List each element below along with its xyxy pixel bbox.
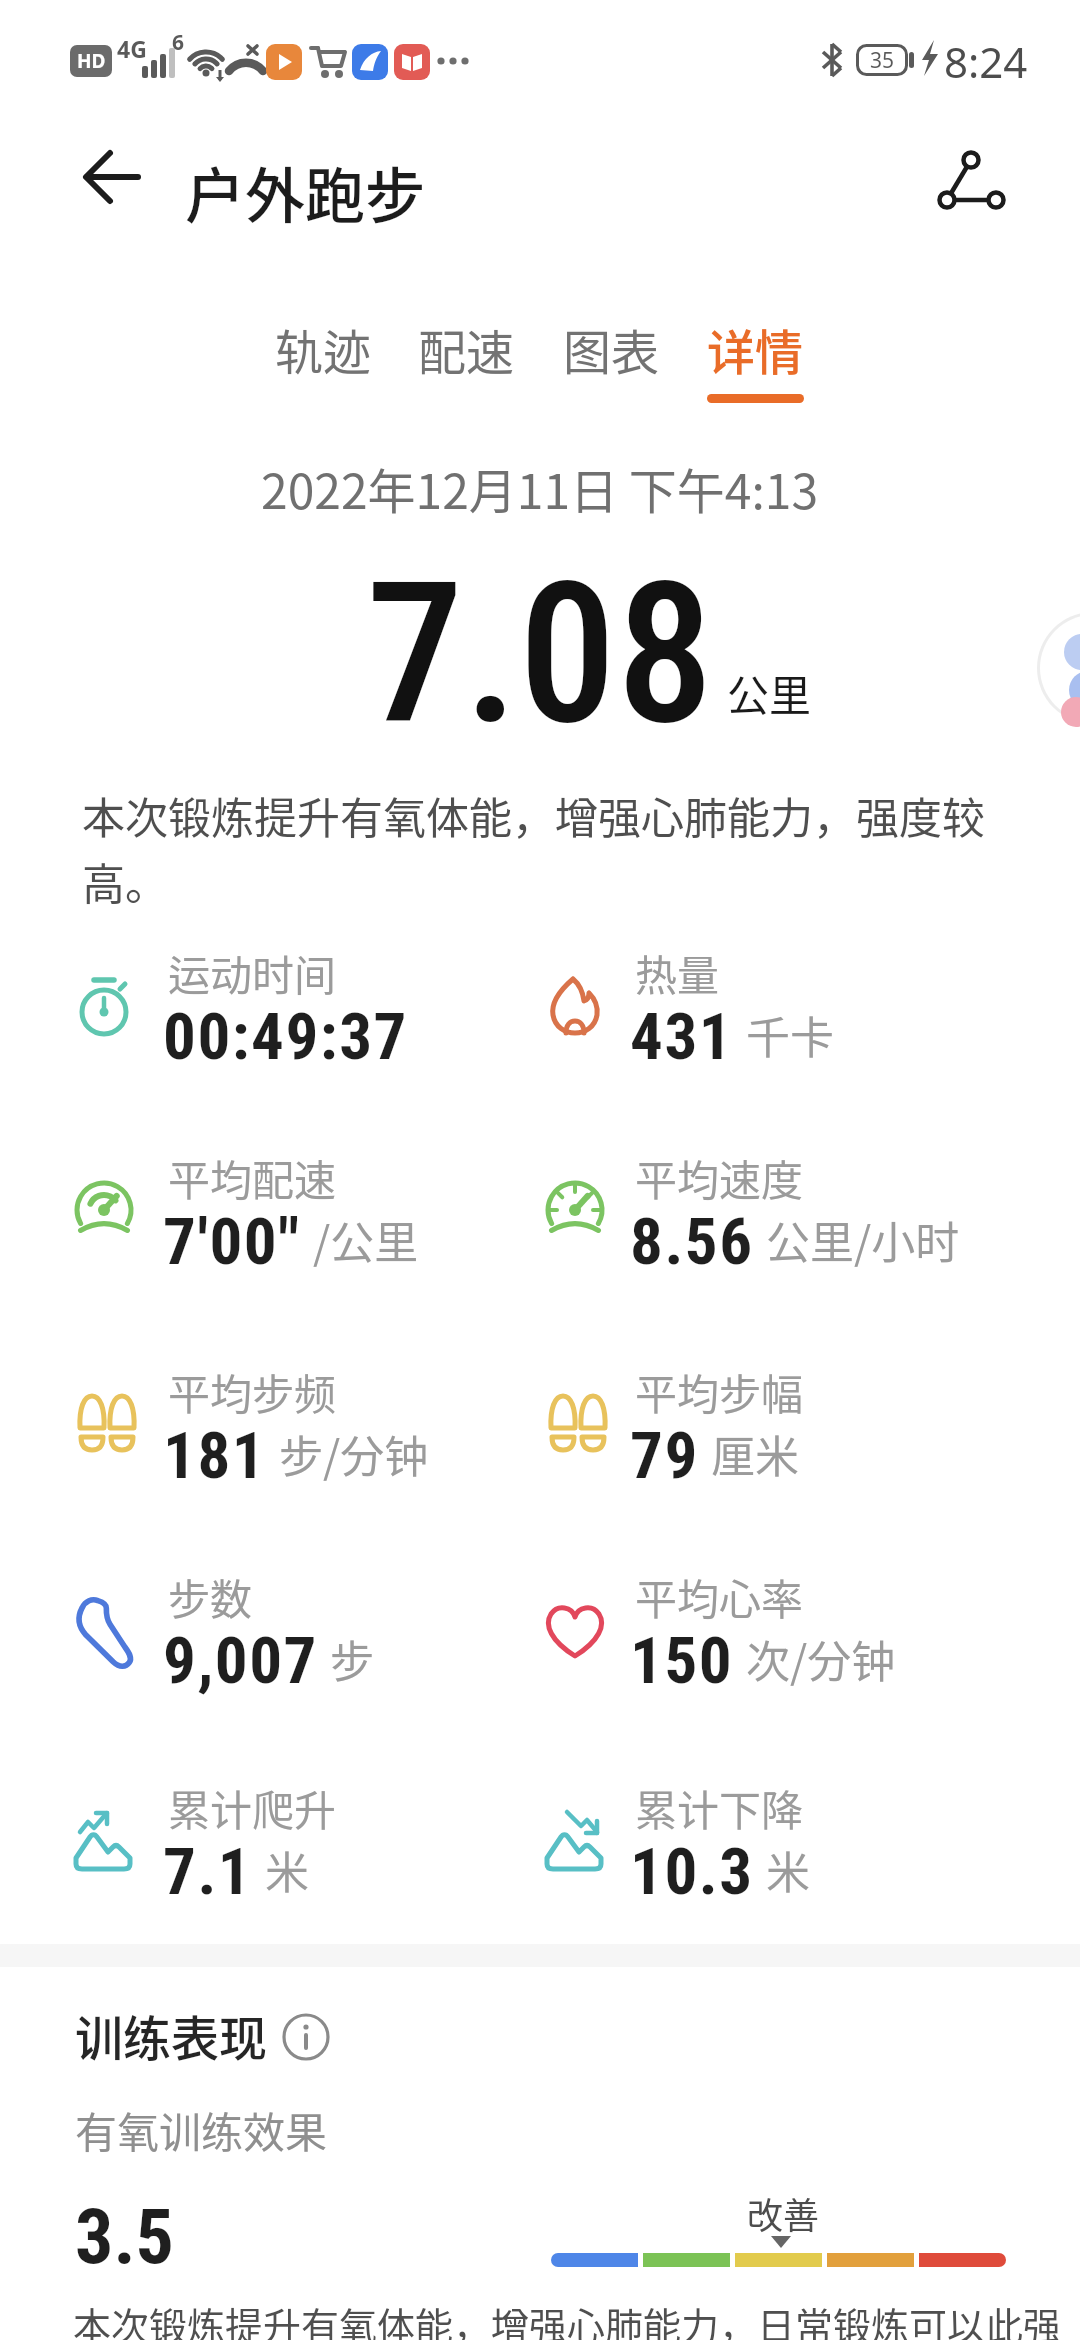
staticText: 热量 [635, 942, 720, 1003]
staticText: 3.5 [75, 2192, 175, 2281]
staticText: 2022年12月11日 下午4:13 [261, 453, 819, 523]
staticText: 本次锻炼提升有氧体能，增强心肺能力，日常锻炼可以此强 [73, 2296, 1062, 2340]
button[interactable]: 配速 [400, 314, 532, 406]
staticText: 平均配速 [168, 1147, 337, 1208]
staticText: 步 [330, 1627, 374, 1691]
staticText: 公里/小时 [766, 1208, 960, 1272]
staticText: 步/分钟 [279, 1422, 429, 1486]
staticText: 公里 [727, 662, 812, 723]
staticText: 累计爬升 [168, 1777, 337, 1838]
button[interactable]: 训练表现 [75, 2000, 330, 2070]
staticText: 35 [870, 46, 895, 75]
staticText: 00:49:37 [163, 999, 408, 1075]
staticText: 厘米 [711, 1422, 799, 1486]
staticText: 训练表现 [75, 2000, 268, 2070]
staticText: 7.08 [366, 540, 714, 769]
staticText: 4G [117, 33, 147, 64]
staticText: 详情 [707, 314, 804, 384]
staticText: 高。 [82, 850, 168, 912]
staticText: 米 [265, 1838, 309, 1902]
staticText: 次/分钟 [746, 1627, 896, 1691]
staticText: 平均步幅 [635, 1361, 804, 1422]
staticText: 6 [172, 28, 185, 57]
staticText: 181 [163, 1418, 267, 1494]
button[interactable] [938, 146, 1018, 218]
button[interactable]: 轨迹 [257, 314, 389, 406]
staticText: 8:24 [944, 33, 1028, 90]
staticText: HD [77, 48, 106, 74]
staticText: 平均心率 [635, 1566, 804, 1627]
button[interactable]: 详情 [689, 314, 821, 406]
button[interactable]: 图表 [545, 314, 677, 406]
staticText: 9,007 [163, 1623, 318, 1699]
button[interactable] [1036, 610, 1080, 726]
staticText: 79 [630, 1418, 699, 1494]
staticText: 配速 [418, 314, 515, 384]
staticText: 运动时间 [168, 942, 337, 1003]
staticText: /公里 [313, 1208, 419, 1272]
staticText: 米 [766, 1838, 810, 1902]
staticText: 150 [630, 1623, 734, 1699]
staticText: 平均速度 [635, 1147, 804, 1208]
staticText: 7'00" [163, 1204, 301, 1280]
staticText: 平均步频 [168, 1361, 337, 1422]
staticText: 累计下降 [635, 1777, 804, 1838]
staticText: 431 [630, 999, 734, 1075]
staticText: 有氧训练效果 [75, 2099, 328, 2160]
button[interactable] [352, 44, 388, 80]
staticText: 千卡 [746, 1003, 834, 1067]
staticText: 8.56 [630, 1204, 754, 1280]
staticText: 轨迹 [275, 314, 372, 384]
button[interactable] [70, 140, 150, 214]
staticText: 本次锻炼提升有氧体能，增强心肺能力，强度较 [82, 784, 985, 846]
staticText: 10.3 [630, 1834, 754, 1910]
button[interactable] [394, 44, 430, 80]
button[interactable] [266, 44, 302, 80]
staticText: 7.1 [163, 1834, 253, 1910]
staticText: 户外跑步 [185, 148, 425, 235]
staticText: 图表 [563, 314, 660, 384]
staticText: 步数 [168, 1566, 253, 1627]
staticText: 改善 [747, 2187, 820, 2239]
